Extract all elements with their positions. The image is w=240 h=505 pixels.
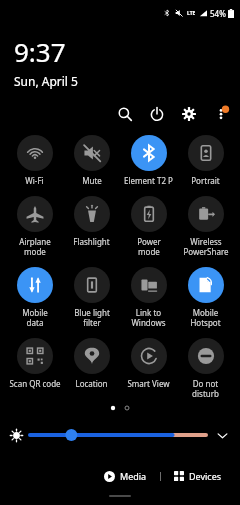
button[interactable]: Location <box>63 338 120 389</box>
button[interactable]: Link to Windows <box>120 267 177 328</box>
button[interactable]: Search <box>114 103 136 125</box>
staticText: LTE <box>187 10 196 17</box>
staticText: Power mode <box>137 236 161 257</box>
button[interactable]: Mute <box>63 135 120 186</box>
button[interactable]: Do not disturb <box>177 338 234 399</box>
button[interactable]: Scan QR code <box>6 338 63 389</box>
button[interactable]: Flashlight <box>63 196 120 247</box>
button[interactable]: Portrait <box>177 135 234 186</box>
staticText: Element T2 P <box>124 175 173 186</box>
button[interactable]: Expand <box>214 427 230 443</box>
button[interactable]: Media <box>100 468 151 484</box>
staticText: Sun, April 5 <box>14 73 78 89</box>
staticText: Flashlight <box>73 236 110 247</box>
staticText: 54% <box>210 8 226 19</box>
button[interactable]: Smart View <box>120 338 177 389</box>
button[interactable]: Power mode <box>120 196 177 257</box>
staticText: Mobile data <box>22 307 48 328</box>
button[interactable]: Element T2 P <box>120 135 177 186</box>
staticText: 9:37 <box>14 34 66 69</box>
button[interactable]: Mobile Hotspot <box>177 267 234 328</box>
staticText: Wireless PowerShare <box>183 236 229 257</box>
button[interactable]: More options <box>210 103 232 125</box>
staticText: Smart View <box>127 378 170 389</box>
staticText: Portrait <box>191 175 220 186</box>
button[interactable]: Power <box>146 103 168 125</box>
staticText: Airplane mode <box>19 236 51 257</box>
button[interactable]: Devices <box>170 468 226 484</box>
staticText: Blue light filter <box>74 307 110 328</box>
staticText: Wi-Fi <box>25 175 44 186</box>
staticText: Devices <box>189 470 222 482</box>
button[interactable]: Mobile data <box>6 267 63 328</box>
button[interactable]: Airplane mode <box>6 196 63 257</box>
button[interactable]: Settings <box>178 103 200 125</box>
staticText: Link to Windows <box>131 307 166 328</box>
staticText: Location <box>75 378 108 389</box>
staticText: Do not disturb <box>192 378 219 399</box>
staticText: Scan QR code <box>9 378 61 389</box>
button[interactable]: Wi-Fi <box>6 135 63 186</box>
button[interactable]: Blue light filter <box>63 267 120 328</box>
button[interactable]: Brightness <box>30 425 206 445</box>
button[interactable]: Wireless PowerShare <box>177 196 234 257</box>
staticText: Mobile Hotspot <box>190 307 221 328</box>
staticText: Media <box>120 470 147 482</box>
staticText: Mute <box>82 175 102 186</box>
